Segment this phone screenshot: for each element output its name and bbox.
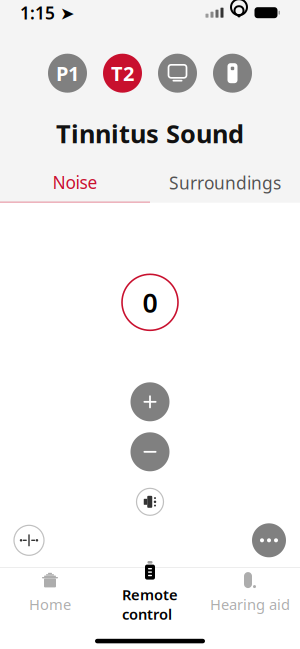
staticText: P1 (56, 60, 79, 86)
button[interactable]: Balance (14, 525, 44, 555)
staticText: 0 (142, 285, 157, 320)
button[interactable]: Program P1 (48, 54, 87, 93)
button[interactable]: Decrease (130, 432, 169, 471)
staticText: Remote control (122, 585, 178, 624)
staticText: T2 (111, 60, 134, 86)
button[interactable]: Noise (0, 164, 150, 202)
staticText: Home (29, 595, 71, 614)
staticText: Noise (52, 171, 97, 194)
button[interactable]: Program T2 (103, 54, 142, 93)
button[interactable]: More options (252, 523, 286, 557)
button[interactable]: Home (0, 568, 100, 616)
staticText: Hearing aid (210, 595, 290, 614)
button[interactable]: TV streamer (158, 54, 197, 93)
staticText: Tinnitus Sound (56, 117, 244, 150)
button[interactable]: Increase (130, 382, 169, 421)
button[interactable]: Remote device (213, 54, 252, 93)
button[interactable]: Mute (136, 488, 163, 515)
button[interactable]: Hearing aid (200, 568, 300, 616)
staticText: 1:15 ➤ (20, 1, 75, 24)
staticText: Surroundings (169, 171, 281, 194)
button[interactable]: Surroundings (150, 164, 300, 202)
button[interactable]: Remote control (100, 568, 200, 616)
